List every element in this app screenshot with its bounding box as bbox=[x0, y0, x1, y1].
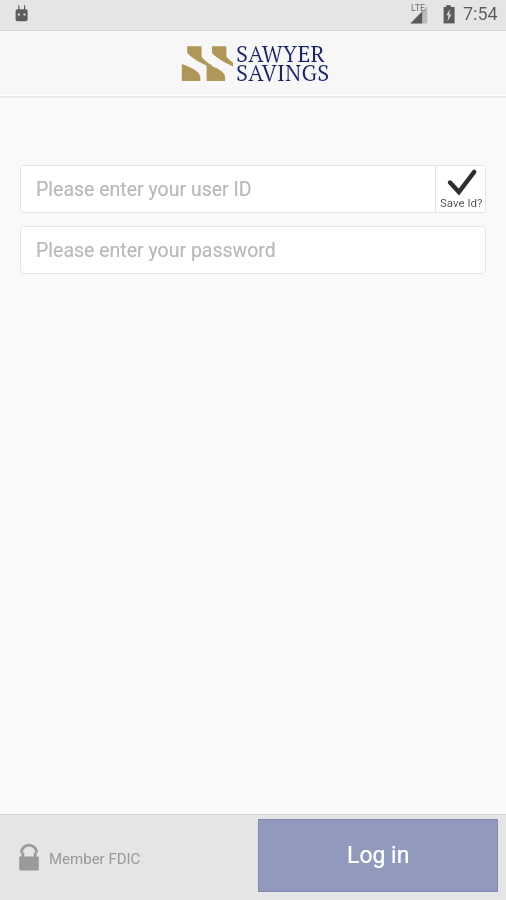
staticText: SAWYER SAVINGS bbox=[236, 39, 330, 88]
button[interactable]: Please enter your user ID bbox=[20, 165, 435, 213]
staticText: Member FDIC bbox=[49, 850, 141, 868]
staticText: Please enter your password bbox=[36, 239, 276, 262]
staticText: Please enter your user ID bbox=[36, 178, 252, 201]
staticText: LTE bbox=[411, 3, 426, 14]
button[interactable]: Log in bbox=[258, 819, 498, 892]
staticText: Save Id? bbox=[440, 196, 483, 209]
staticText: 7:54 bbox=[463, 3, 498, 24]
staticText: Log in bbox=[347, 842, 410, 869]
button[interactable]: Member FDIC bbox=[19, 844, 141, 871]
button[interactable]: Save Id bbox=[436, 165, 486, 213]
button[interactable]: Please enter your password bbox=[20, 226, 486, 274]
